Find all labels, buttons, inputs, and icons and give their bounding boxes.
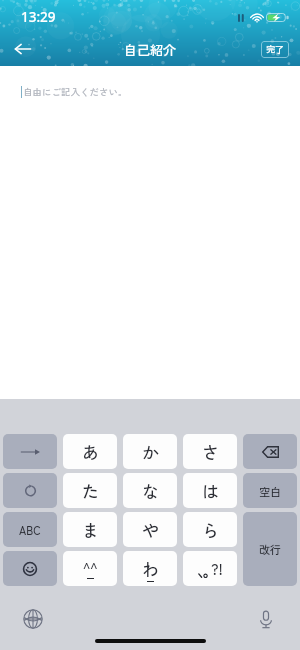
button[interactable]: あ <box>63 434 117 469</box>
staticText: あ <box>82 439 99 464</box>
button[interactable]: Back <box>6 33 38 65</box>
staticText: ら <box>202 517 219 542</box>
button[interactable]: 完了 <box>261 41 289 58</box>
button[interactable]: か <box>123 434 177 469</box>
staticText: な <box>142 478 159 503</box>
button[interactable]: 空白 <box>243 473 297 508</box>
staticText: ^^ <box>83 558 98 577</box>
staticText: ?! <box>211 558 223 580</box>
button[interactable]: Undo <box>3 473 57 508</box>
staticText: ABC <box>19 522 41 538</box>
staticText: 完了 <box>266 43 285 56</box>
staticText: 改行 <box>259 541 281 557</box>
staticText: や <box>142 517 159 542</box>
button[interactable]: Delete <box>243 434 297 469</box>
staticText: 空白 <box>259 483 281 499</box>
button[interactable]: Change keyboard <box>18 604 48 634</box>
staticText: た <box>82 478 99 503</box>
staticText: 13:29 <box>21 8 56 26</box>
button[interactable]: Voice input <box>251 604 281 634</box>
button[interactable]: は <box>183 473 237 508</box>
staticText: わ <box>142 556 159 581</box>
button[interactable]: ABC <box>3 512 57 547</box>
staticText: は <box>202 478 219 503</box>
button[interactable]: Next candidate <box>3 434 57 469</box>
staticText: か <box>142 439 159 464</box>
staticText: 自己紹介 <box>124 40 177 59</box>
staticText: 自由にご記入ください。 <box>23 85 128 99</box>
button[interactable]: た <box>63 473 117 508</box>
staticText: さ <box>202 439 219 464</box>
button[interactable]: 改行 <box>243 512 297 586</box>
button[interactable]: な <box>123 473 177 508</box>
button[interactable]: ^^ <box>63 551 117 586</box>
button[interactable]: ?! <box>183 551 237 586</box>
button[interactable]: わ <box>123 551 177 586</box>
button[interactable]: ま <box>63 512 117 547</box>
button[interactable]: Emoji <box>3 551 57 586</box>
button[interactable]: さ <box>183 434 237 469</box>
staticText: ま <box>82 517 99 542</box>
button[interactable]: ら <box>183 512 237 547</box>
button[interactable]: や <box>123 512 177 547</box>
